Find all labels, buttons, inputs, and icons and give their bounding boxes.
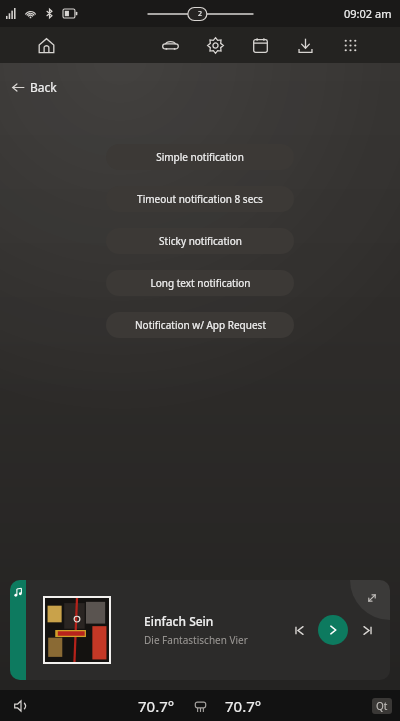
staticText: Long text notification: [150, 276, 251, 290]
button[interactable]: Apps: [334, 29, 366, 61]
staticText: 09:02 am: [344, 6, 392, 21]
button[interactable]: Notification w/ App Request: [106, 312, 294, 338]
staticText: Die Fantastischen Vier: [144, 633, 248, 647]
button[interactable]: Home: [30, 29, 62, 61]
staticText: Simple notification: [156, 150, 244, 164]
button[interactable]: Next: [354, 617, 380, 643]
staticText: Timeout notification 8 secs: [137, 192, 263, 206]
button[interactable]: Climate: [189, 695, 211, 717]
staticText: Back: [30, 79, 57, 95]
button[interactable]: 70.7°: [138, 696, 175, 716]
button[interactable]: Car: [154, 29, 186, 61]
staticText: Notification w/ App Request: [135, 318, 266, 332]
button[interactable]: Play: [318, 615, 348, 645]
button[interactable]: Long text notification: [106, 270, 294, 296]
button[interactable]: Volume: [8, 693, 34, 719]
button[interactable]: 70.7°: [225, 696, 262, 716]
staticText: Qt: [376, 699, 388, 713]
button[interactable]: Qt: [372, 698, 392, 714]
button[interactable]: Timeout notification 8 secs: [106, 186, 294, 212]
staticText: 2: [198, 9, 203, 19]
button[interactable]: Settings: [199, 29, 231, 61]
button[interactable]: Expand: [362, 588, 382, 608]
button[interactable]: Sticky notification: [106, 228, 294, 254]
button[interactable]: Back: [8, 75, 61, 99]
staticText: Einfach Sein: [144, 613, 214, 629]
staticText: Sticky notification: [159, 234, 242, 248]
button[interactable]: Calendar: [244, 29, 276, 61]
button[interactable]: Previous: [286, 617, 312, 643]
button[interactable]: Downloads: [289, 29, 321, 61]
button[interactable]: Einfach Sein: [10, 580, 390, 680]
button[interactable]: Simple notification: [106, 144, 294, 170]
